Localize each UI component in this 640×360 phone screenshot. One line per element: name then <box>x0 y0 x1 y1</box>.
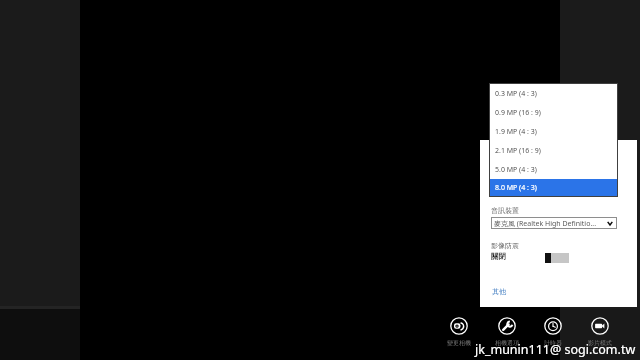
button[interactable]: 0.9 MP (16 : 9) <box>490 103 617 122</box>
staticText: 影像防震 <box>491 241 519 250</box>
staticText: 關閉 <box>491 252 506 261</box>
button[interactable]: 2.1 MP (16 : 9) <box>490 141 617 160</box>
button[interactable]: 其他 <box>492 287 506 296</box>
staticText: 變更相機 <box>437 339 481 347</box>
button[interactable]: Change camera <box>437 313 481 347</box>
staticText: 8.0 MP (4 : 3) <box>495 183 537 193</box>
staticText: 2.1 MP (16 : 9) <box>495 146 541 156</box>
staticText: 計時器 <box>531 339 575 347</box>
button[interactable]: Timer <box>531 313 575 347</box>
button[interactable]: 1.9 MP (4 : 3) <box>490 122 617 141</box>
button[interactable]: 5.0 MP (4 : 3) <box>490 160 617 179</box>
button[interactable]: 麥克風 (Realtek High Definitio... <box>491 217 617 229</box>
staticText: 5.0 MP (4 : 3) <box>495 165 537 175</box>
button[interactable]: Camera options <box>485 313 529 347</box>
staticText: 0.3 MP (4 : 3) <box>495 89 537 99</box>
staticText: 麥克風 (Realtek High Definitio... <box>494 219 597 229</box>
button[interactable]: 0.3 MP (4 : 3) <box>490 84 617 103</box>
button[interactable]: 8.0 MP (4 : 3) <box>490 179 617 197</box>
staticText: jk_munin111@ sogi.com.tw <box>475 341 636 358</box>
staticText: 音訊裝置 <box>491 206 519 215</box>
button[interactable]: Image stabilisation toggle <box>545 253 569 263</box>
button[interactable]: Video mode <box>578 313 622 347</box>
staticText: 1.9 MP (4 : 3) <box>495 127 537 137</box>
staticText: 0.9 MP (16 : 9) <box>495 108 541 118</box>
staticText: 相機選項 <box>485 339 529 347</box>
staticText: 影片模式 <box>578 339 622 347</box>
